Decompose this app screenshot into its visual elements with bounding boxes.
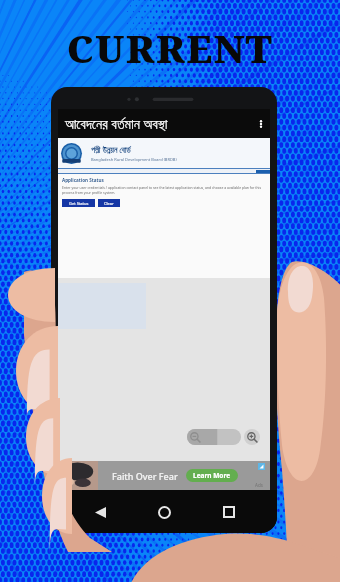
button[interactable]: Recents — [213, 496, 245, 528]
button[interactable]: Home — [148, 496, 180, 528]
staticText: Ads — [255, 482, 263, 488]
button[interactable]: More options — [252, 109, 270, 138]
staticText: আবেদনের বর্তমান অবস্থা — [65, 114, 168, 133]
button[interactable]: Clear — [98, 199, 120, 207]
staticText: Bangladesh Rural Development Board (BRDB… — [91, 157, 177, 162]
button[interactable]: Zoom in — [244, 429, 260, 445]
button[interactable]: Zoom out — [187, 429, 241, 445]
staticText: পল্লী উন্নয়ন বোর্ড — [91, 144, 131, 155]
staticText: Learn More — [193, 471, 231, 480]
button[interactable]: Learn More — [193, 471, 231, 480]
staticText: Get Status — [69, 201, 89, 206]
button[interactable]: Menu — [256, 170, 270, 174]
staticText: Enter your user credentials / applicatio… — [62, 185, 264, 195]
button[interactable]: Faith Over Fear — [58, 461, 270, 490]
staticText: Faith Over Fear — [112, 470, 178, 482]
staticText: CURRENT — [0, 22, 340, 74]
staticText: Application Status — [62, 177, 104, 183]
staticText: Clear — [104, 201, 114, 206]
button[interactable]: Back — [84, 496, 116, 528]
button[interactable]: Get Status — [62, 199, 95, 207]
